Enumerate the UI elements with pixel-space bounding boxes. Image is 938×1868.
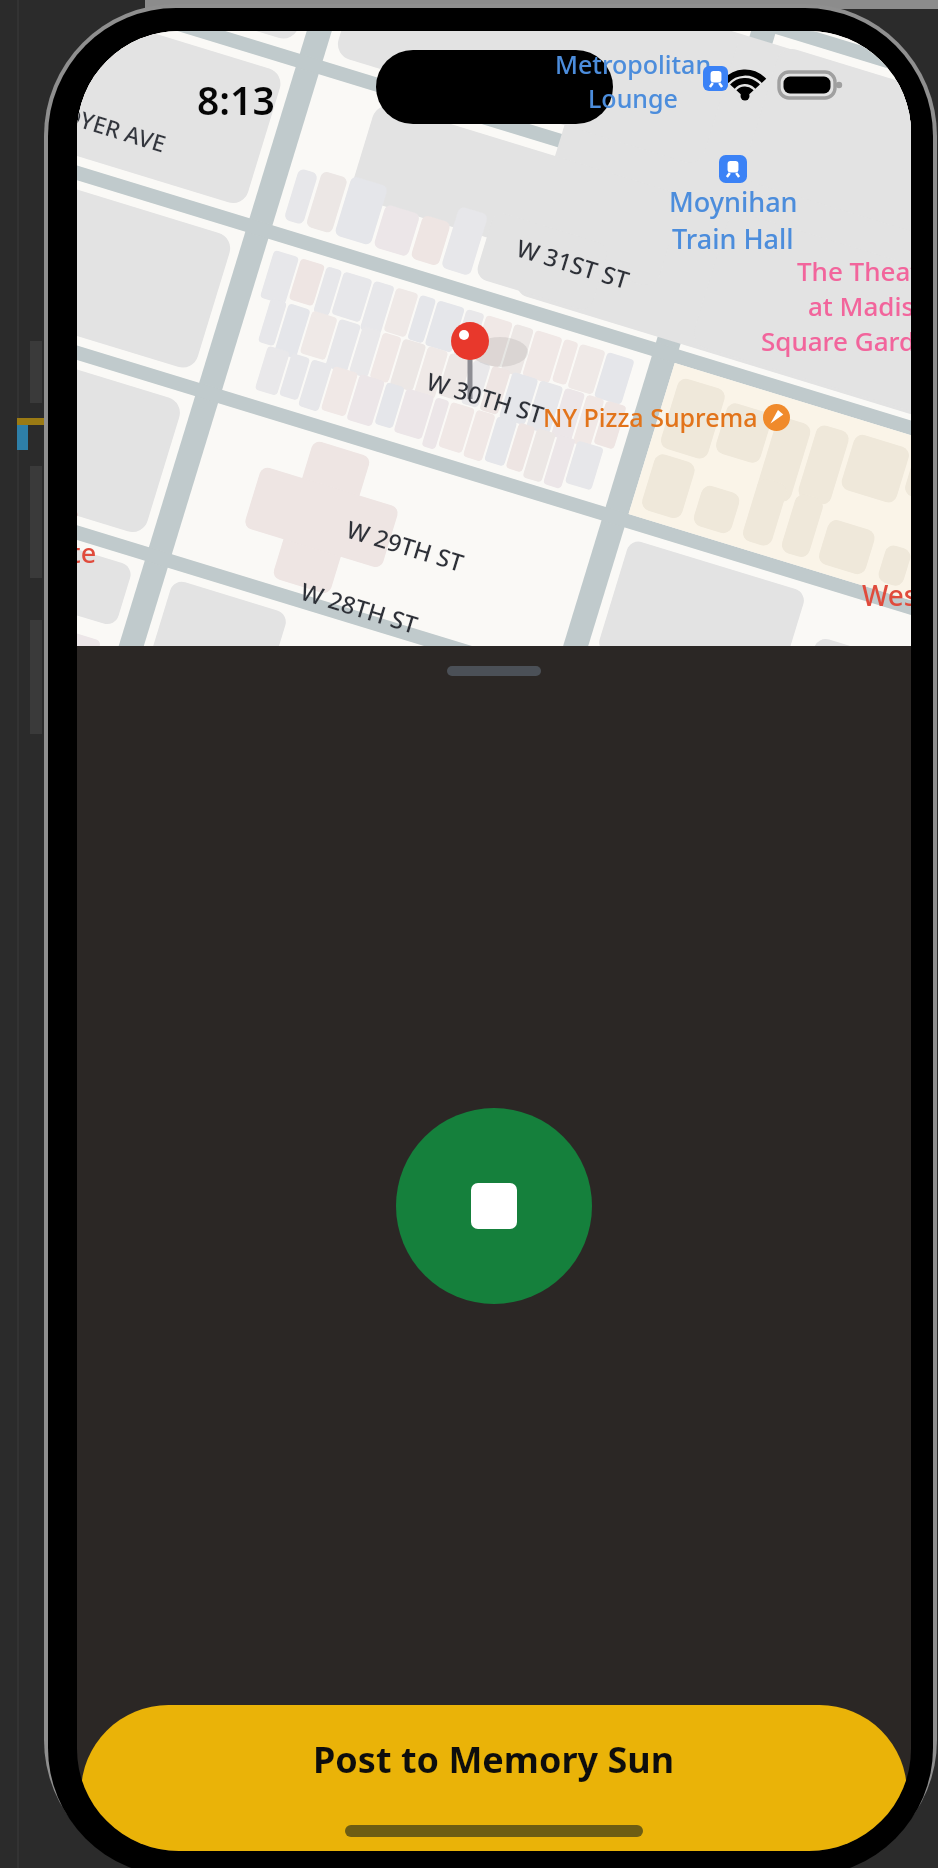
staticText: ite	[77, 534, 97, 571]
staticText: Lounge	[588, 81, 678, 115]
staticText: W 28TH ST	[297, 574, 422, 641]
button[interactable]: Stop recording	[396, 1108, 592, 1304]
staticText: at Madison	[808, 288, 911, 323]
staticText: 8:13	[197, 73, 275, 126]
staticText: DYER AVE	[77, 98, 170, 159]
staticText: W 30TH ST	[423, 364, 548, 431]
staticText: The Theater	[797, 253, 911, 288]
staticText: Square Garden	[761, 323, 911, 358]
staticText: West	[862, 576, 911, 614]
button[interactable]: Post to Memory Sun	[81, 1705, 907, 1851]
staticText: Train Hall	[672, 220, 794, 257]
staticText: W 29TH ST	[343, 512, 468, 579]
staticText: Post to Memory Sun	[313, 1735, 675, 1784]
staticText: W 31ST ST	[513, 231, 633, 296]
staticText: 9	[77, 497, 79, 534]
staticText: NY Pizza Suprema	[543, 400, 758, 434]
staticText: Moynihan	[669, 183, 798, 220]
staticText: Metropolitan	[555, 47, 712, 81]
